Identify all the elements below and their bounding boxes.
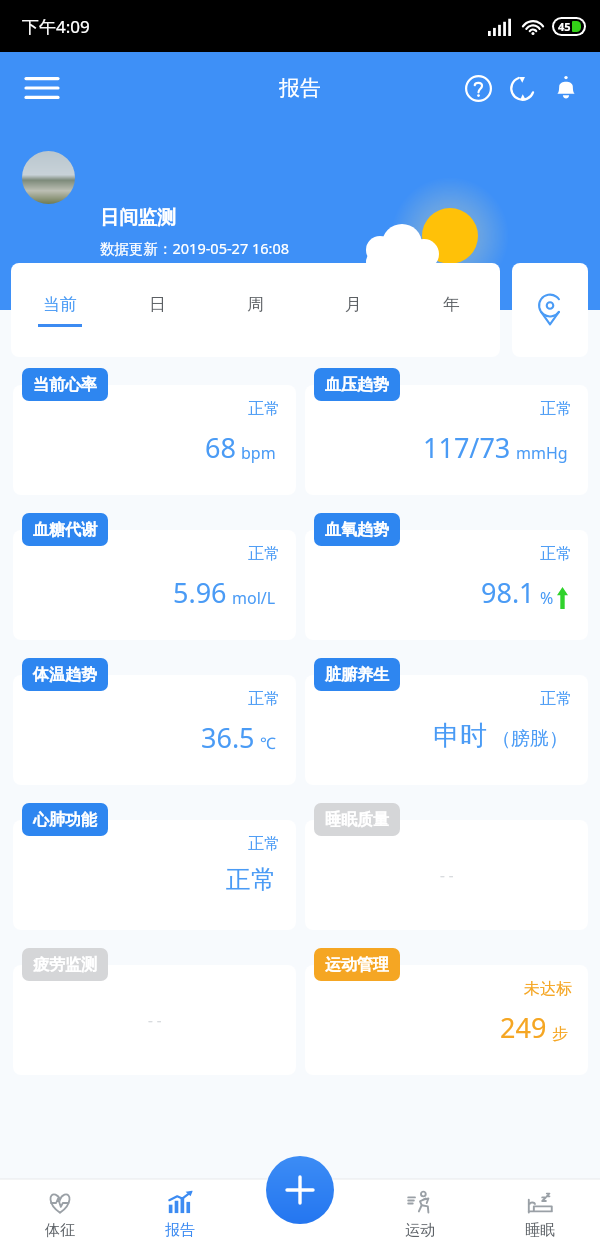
staticText: - -	[440, 865, 454, 885]
button[interactable]: 血压趋势	[325, 368, 389, 401]
button[interactable]: Refresh	[500, 66, 544, 110]
staticText: mol/L	[232, 587, 276, 609]
staticText: bpm	[241, 442, 276, 464]
button[interactable]: 体征	[0, 1179, 120, 1249]
staticText: 下午4:09	[22, 15, 90, 38]
button[interactable]: 正常	[13, 675, 296, 785]
staticText: 睡眠质量	[325, 810, 389, 830]
button[interactable]: 体温趋势	[33, 658, 97, 691]
staticText: 36.5	[201, 719, 255, 756]
staticText: （膀胱）	[492, 727, 568, 751]
staticText: 运动管理	[325, 955, 389, 975]
button[interactable]: 正常	[305, 530, 588, 640]
button[interactable]: 周	[206, 263, 304, 357]
button[interactable]: 正常	[13, 820, 296, 930]
staticText: 年	[443, 294, 460, 315]
staticText: 5.96	[173, 574, 227, 611]
button[interactable]: 运动管理	[325, 948, 389, 981]
staticText: 日	[149, 294, 166, 315]
button[interactable]: Menu	[14, 60, 70, 116]
staticText: 申时	[433, 719, 487, 753]
staticText: 周	[247, 294, 264, 315]
staticText: 正常	[248, 544, 280, 564]
staticText: 运动	[405, 1221, 435, 1240]
staticText: 正常	[540, 689, 572, 709]
button[interactable]: - -	[13, 965, 296, 1075]
button[interactable]: 脏腑养生	[325, 658, 389, 691]
button[interactable]: 心肺功能	[33, 803, 97, 836]
staticText: 正常	[540, 544, 572, 564]
button[interactable]: 正常	[13, 385, 296, 495]
staticText: 数据更新：2019-05-27 16:08	[100, 238, 290, 258]
staticText: 日间监测	[100, 206, 176, 230]
staticText: - -	[148, 1010, 162, 1030]
button[interactable]: 血糖代谢	[33, 513, 97, 546]
staticText: mmHg	[516, 442, 568, 464]
button[interactable]: - -	[305, 820, 588, 930]
staticText: 98.1	[481, 574, 535, 611]
staticText: 正常	[248, 834, 280, 854]
staticText: 未达标	[524, 979, 572, 999]
button[interactable]: 正常	[13, 530, 296, 640]
staticText: 正常	[540, 399, 572, 419]
button[interactable]: 正常	[305, 385, 588, 495]
button[interactable]: 报告	[120, 1179, 240, 1249]
staticText: 血氧趋势	[325, 520, 389, 540]
staticText: 117/73	[423, 429, 511, 466]
staticText: 正常	[248, 689, 280, 709]
button[interactable]: 睡眠质量	[325, 803, 389, 836]
staticText: 步	[552, 1024, 568, 1044]
button[interactable]: 未达标	[305, 965, 588, 1075]
button[interactable]: 正常	[305, 675, 588, 785]
staticText: 体征	[45, 1221, 75, 1240]
staticText: 249	[500, 1009, 547, 1046]
button[interactable]: 血氧趋势	[325, 513, 389, 546]
staticText: 体温趋势	[33, 665, 97, 685]
staticText: ℃	[260, 732, 276, 754]
button[interactable]: Location	[512, 263, 588, 357]
staticText: %	[540, 587, 554, 609]
staticText: 脏腑养生	[325, 665, 389, 685]
button[interactable]: 疲劳监测	[33, 948, 97, 981]
staticText: 心肺功能	[33, 810, 97, 830]
staticText: 报告	[165, 1221, 195, 1240]
staticText: 疲劳监测	[33, 955, 97, 975]
button[interactable]: Add	[266, 1156, 334, 1224]
button[interactable]: 当前心率	[33, 368, 97, 401]
staticText: 报告	[279, 75, 321, 101]
staticText: 68	[205, 429, 236, 466]
button[interactable]: 睡眠	[480, 1179, 600, 1249]
button[interactable]: 日	[108, 263, 206, 357]
staticText: 正常	[248, 399, 280, 419]
button[interactable]: Notifications	[544, 66, 588, 110]
button[interactable]: 运动	[360, 1179, 480, 1249]
button[interactable]: Help	[456, 66, 500, 110]
button[interactable]: 月	[304, 263, 402, 357]
button[interactable]: 年	[402, 263, 500, 357]
button[interactable]: 当前	[11, 263, 108, 357]
staticText: 血糖代谢	[33, 520, 97, 540]
staticText: 当前	[43, 294, 77, 315]
staticText: 月	[345, 294, 362, 315]
staticText: 45	[558, 19, 571, 34]
staticText: 血压趋势	[325, 375, 389, 395]
staticText: 睡眠	[525, 1221, 555, 1240]
staticText: 当前心率	[33, 375, 97, 395]
staticText: 正常	[226, 864, 276, 895]
